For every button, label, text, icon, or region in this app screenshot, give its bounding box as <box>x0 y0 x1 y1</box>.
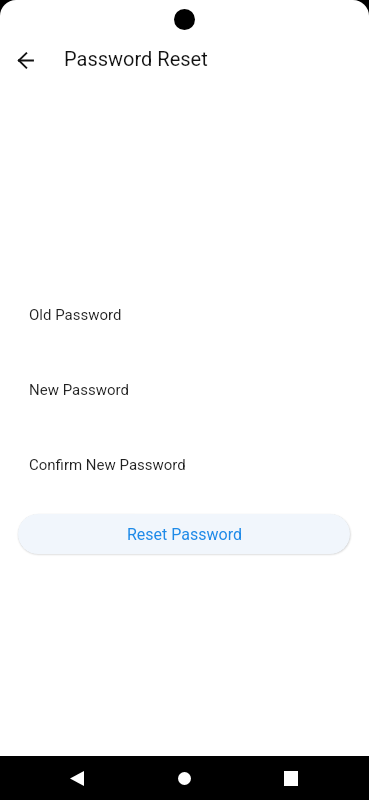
button[interactable]: Recents <box>260 756 322 800</box>
button[interactable]: Home <box>153 756 215 800</box>
staticText: Reset Password <box>127 525 242 544</box>
staticText: Old Password <box>29 306 122 324</box>
button[interactable]: New Password <box>0 379 369 401</box>
staticText: New Password <box>29 381 129 399</box>
button[interactable]: Back <box>1 36 49 84</box>
button[interactable]: Reset Password <box>18 514 350 554</box>
button[interactable]: Back <box>46 756 108 800</box>
staticText: Confirm New Password <box>29 456 186 474</box>
button[interactable]: Old Password <box>0 304 369 326</box>
button[interactable]: Confirm New Password <box>0 454 369 476</box>
staticText: Password Reset <box>64 47 208 70</box>
